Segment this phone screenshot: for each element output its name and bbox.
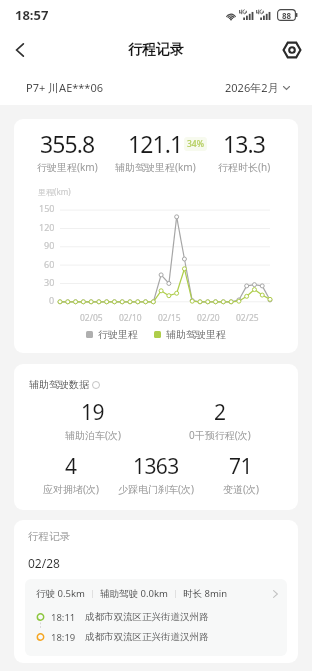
staticText: 1363 (133, 452, 179, 481)
staticText: 30 (44, 276, 55, 288)
staticText: 02/10 (119, 312, 142, 324)
staticText: 变道(次) (223, 482, 259, 496)
staticText: 行程记录 (28, 530, 70, 543)
staticText: 应对拥堵(次) (43, 482, 99, 496)
staticText: 辅助驾驶数据 (29, 378, 89, 391)
staticText: 13.3 (223, 128, 266, 159)
button[interactable]: Back (0, 30, 40, 70)
staticText: 02/20 (197, 312, 220, 324)
staticText: 19 (81, 398, 104, 427)
staticText: 0 (49, 294, 55, 306)
staticText: 辅助驾驶里程(km) (115, 160, 196, 174)
staticText: 90 (44, 239, 55, 251)
staticText: 成都市双流区正兴街道汉州路 (85, 611, 209, 623)
staticText: 60 (44, 258, 55, 270)
staticText: 辅助驾驶里程 (166, 328, 226, 341)
staticText: 少踩电门刹车(次) (118, 482, 194, 496)
staticText: 4 (65, 452, 77, 481)
staticText: 行驶里程 (98, 328, 138, 341)
staticText: 行驶 0.5km (36, 587, 85, 600)
staticText: 18:57 (15, 6, 49, 24)
staticText: P7+ 川AE***06 (26, 80, 104, 95)
button[interactable]: Settings (272, 30, 312, 70)
staticText: 150 (39, 202, 55, 214)
staticText: 02/28 (28, 555, 60, 571)
staticText: 时长 8min (183, 587, 228, 600)
staticText: 辅助驾驶 0.0km (100, 587, 168, 600)
button[interactable]: 行驶 0.5km (25, 579, 287, 656)
button[interactable]: 2026年2月 (225, 80, 290, 95)
staticText: 成都市双流区正兴街道汉州路 (85, 631, 209, 643)
staticText: 88 (282, 10, 292, 21)
staticText: 2 (214, 398, 226, 427)
staticText: 里程(km) (38, 186, 71, 197)
staticText: 辅助泊车(次) (65, 428, 121, 442)
staticText: 行驶里程(km) (37, 160, 98, 174)
staticText: 71 (229, 452, 252, 481)
staticText: 355.8 (40, 128, 95, 159)
staticText: 18:11 (51, 611, 76, 624)
staticText: 18:19 (51, 631, 76, 644)
staticText: 行程时长(h) (218, 160, 271, 174)
staticText: 02/15 (158, 312, 181, 324)
staticText: 02/25 (236, 312, 259, 324)
staticText: 121.1 (128, 128, 183, 159)
staticText: 0干预行程(次) (189, 428, 251, 442)
staticText: 120 (39, 221, 55, 233)
staticText: 34% (187, 138, 204, 150)
staticText: 2026年2月 (225, 80, 279, 95)
staticText: 行程记录 (128, 41, 184, 59)
staticText: 02/05 (80, 312, 103, 324)
